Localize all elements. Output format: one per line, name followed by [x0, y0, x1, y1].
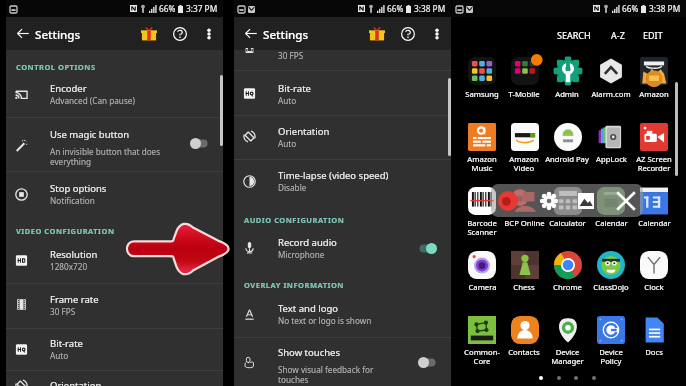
staticText: Bit-rate [278, 82, 311, 95]
button[interactable] [546, 119, 588, 167]
button[interactable]: A-Z [604, 26, 632, 44]
staticText: 3:37 PM [186, 3, 218, 14]
staticText: Device Manager [551, 347, 584, 366]
staticText: A-Z [611, 29, 625, 41]
staticText: Common- Core [464, 347, 500, 366]
button[interactable] [590, 119, 632, 167]
staticText: Calendar [638, 218, 671, 228]
staticText: Disable [278, 182, 307, 193]
button[interactable]: More options [196, 21, 221, 46]
staticText: ClassDojo [593, 282, 629, 292]
button[interactable] [633, 312, 675, 360]
button[interactable] [461, 119, 503, 167]
button[interactable]: Toggle setting [182, 130, 216, 156]
button[interactable]: Gift [360, 17, 393, 50]
staticText: Auto [50, 350, 69, 361]
button[interactable] [633, 119, 675, 167]
staticText: Samsung [465, 89, 499, 99]
staticText: Advanced (Can pause) [50, 95, 135, 106]
button[interactable] [503, 312, 545, 360]
staticText: Stop options [50, 182, 107, 195]
staticText: Text and logo [278, 302, 339, 315]
staticText: Calculator [549, 218, 586, 228]
button[interactable] [546, 54, 588, 102]
staticText: Auto [278, 138, 297, 149]
staticText: 30 FPS [50, 306, 76, 317]
staticText: 3:38 PM [414, 3, 446, 14]
button[interactable] [590, 312, 632, 360]
staticText: Orientation [278, 125, 330, 138]
staticText: Use magic button [50, 128, 130, 141]
staticText: Chess [513, 282, 535, 292]
staticText: Orientation [50, 379, 102, 386]
staticText: Amazon Video [509, 154, 539, 173]
button[interactable] [546, 183, 588, 231]
button[interactable] [461, 312, 503, 360]
staticText: Contacts [508, 347, 540, 357]
button[interactable]: Navigate up [234, 17, 267, 50]
staticText: Barcode Scanner [467, 218, 497, 237]
staticText: 66% [159, 3, 176, 14]
button[interactable]: SEARCH [556, 26, 592, 44]
button[interactable] [633, 183, 675, 231]
staticText: An invisible button that does everything [50, 146, 161, 167]
button[interactable] [503, 183, 545, 231]
button[interactable] [546, 247, 588, 295]
button[interactable] [461, 247, 503, 295]
staticText: Amazon [639, 89, 669, 99]
staticText: OVERLAY INFORMATION [244, 280, 344, 290]
staticText: SEARCH [557, 29, 591, 41]
staticText: Settings [263, 27, 309, 43]
button[interactable]: Toggle setting [410, 235, 444, 261]
staticText: VIDEO CONFIGURATION [16, 226, 115, 236]
staticText: Show touches [278, 346, 340, 359]
button[interactable] [633, 247, 675, 295]
staticText: Calendar [595, 218, 628, 228]
staticText: Android Pay [545, 154, 589, 164]
button[interactable]: Help [391, 17, 424, 50]
staticText: No text or logo is shown [278, 315, 372, 326]
button[interactable]: EDIT [637, 26, 668, 44]
staticText: 3:38 PM [649, 3, 681, 14]
button[interactable]: Gift [132, 17, 165, 50]
staticText: AUDIO CONFIGURATION [244, 215, 345, 225]
button[interactable] [503, 247, 545, 295]
button[interactable] [546, 312, 588, 360]
staticText: Clock [644, 282, 664, 292]
button[interactable] [503, 54, 545, 102]
staticText: Auto [278, 95, 297, 106]
button[interactable] [590, 183, 632, 231]
button[interactable]: Help [163, 17, 196, 50]
button[interactable]: More options [424, 21, 449, 46]
staticText: BCP Online [504, 218, 545, 228]
staticText: 66% [622, 3, 639, 14]
button[interactable] [590, 247, 632, 295]
staticText: Frame rate [50, 293, 99, 306]
button[interactable]: Toggle setting [410, 349, 444, 375]
staticText: Docs [645, 347, 663, 357]
staticText: 30 FPS [278, 50, 304, 61]
staticText: Device Policy [599, 347, 623, 366]
button[interactable] [461, 54, 503, 102]
staticText: Record audio [278, 236, 337, 249]
staticText: Alarm.com [591, 89, 631, 99]
staticText: Encoder [50, 82, 87, 95]
staticText: Bit-rate [50, 337, 83, 350]
staticText: AZ Screen Recorder [636, 154, 672, 173]
button[interactable] [461, 183, 503, 231]
button[interactable] [590, 54, 632, 102]
button[interactable]: Navigate up [6, 17, 39, 50]
staticText: Resolution [50, 248, 98, 261]
staticText: Amazon Music [467, 154, 497, 173]
staticText: AppLock [596, 154, 627, 164]
staticText: Notification [50, 195, 95, 206]
staticText: Admin [555, 89, 579, 99]
staticText: EDIT [643, 29, 663, 41]
staticText: 1280x720 [50, 261, 88, 272]
staticText: Camera [468, 282, 497, 292]
staticText: Microphone [278, 249, 325, 260]
button[interactable] [633, 54, 675, 102]
staticText: T-Mobile [508, 89, 540, 99]
staticText: CONTROL OPTIONS [16, 62, 96, 72]
button[interactable] [503, 119, 545, 167]
